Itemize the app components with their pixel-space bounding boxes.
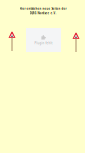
staticText: Plugin fehlt: [34, 41, 52, 45]
staticText: Hier entstehen neue Seiten der: [19, 7, 66, 11]
button[interactable]: Plugin fehlt: [26, 28, 61, 52]
staticText: DLRG Nordsee e.V.: [29, 11, 56, 15]
